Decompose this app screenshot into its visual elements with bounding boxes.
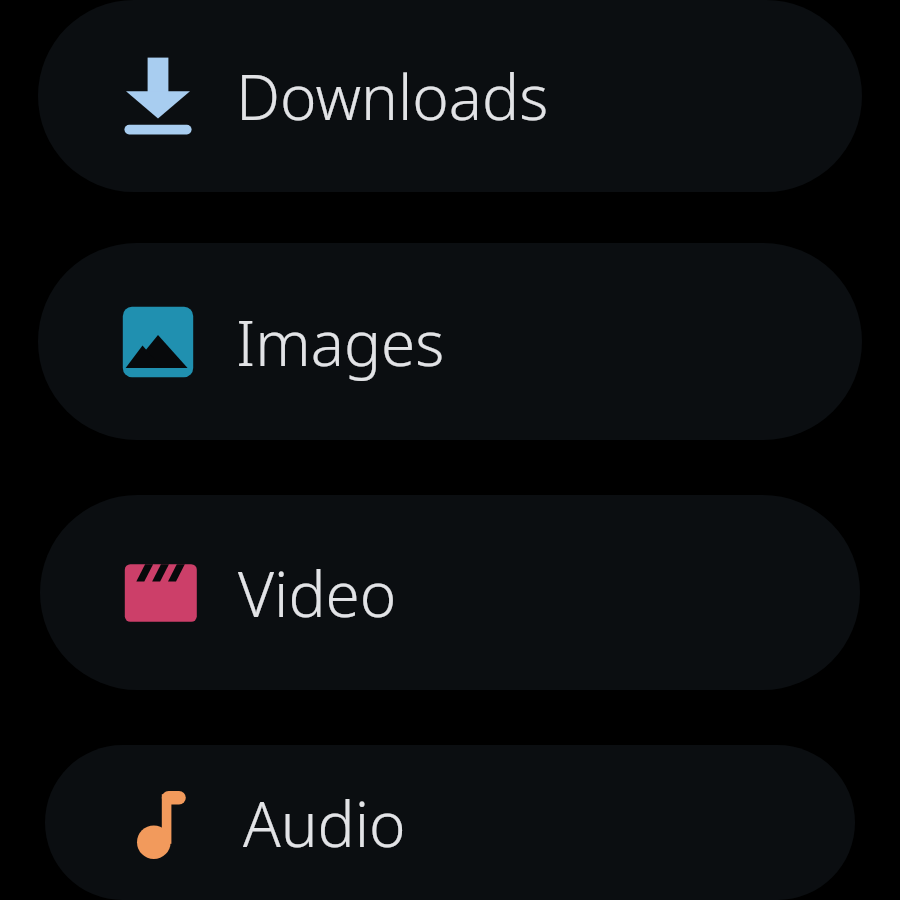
button[interactable]: Images xyxy=(38,243,862,440)
button[interactable]: Audio xyxy=(45,745,855,900)
staticText: Video xyxy=(238,551,397,635)
staticText: Downloads xyxy=(236,54,549,138)
staticText: Images xyxy=(236,300,445,384)
other: Images xyxy=(118,302,198,382)
button[interactable]: Downloads xyxy=(38,0,862,192)
other: Downloads xyxy=(118,56,198,136)
button[interactable]: Video xyxy=(40,495,860,690)
other: Video xyxy=(120,553,200,633)
other: Audio xyxy=(125,783,205,863)
staticText: Audio xyxy=(243,781,406,865)
